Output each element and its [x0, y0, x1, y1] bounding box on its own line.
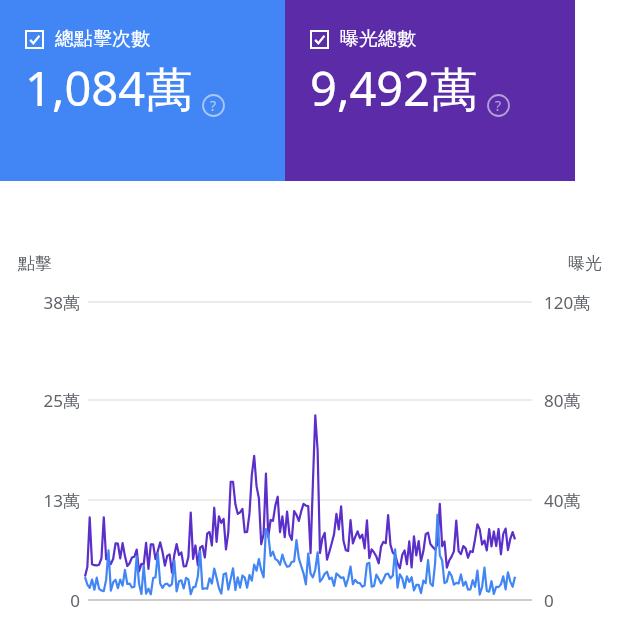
staticText: ? — [495, 96, 502, 115]
staticText: 25萬 — [8, 389, 80, 412]
staticText: 1,084萬 — [25, 56, 193, 120]
button[interactable]: Total impressions help — [483, 90, 513, 120]
staticText: 曝光總數 — [340, 27, 416, 51]
staticText: 總點擊次數 — [55, 27, 150, 51]
button[interactable]: 總點擊次數 — [0, 0, 285, 181]
staticText: 120萬 — [544, 291, 624, 314]
staticText: 80萬 — [544, 389, 624, 412]
button[interactable]: 曝光總數 — [285, 0, 575, 181]
staticText: 9,492萬 — [310, 56, 478, 120]
staticText: 13萬 — [8, 489, 80, 512]
staticText: 0 — [544, 589, 624, 612]
staticText: ? — [210, 96, 217, 115]
button[interactable]: Total clicks help — [198, 90, 228, 120]
staticText: 點擊 — [18, 253, 52, 274]
staticText: 40萬 — [544, 489, 624, 512]
staticText: 曝光 — [568, 253, 602, 274]
staticText: 38萬 — [8, 291, 80, 314]
staticText: 0 — [8, 589, 80, 612]
